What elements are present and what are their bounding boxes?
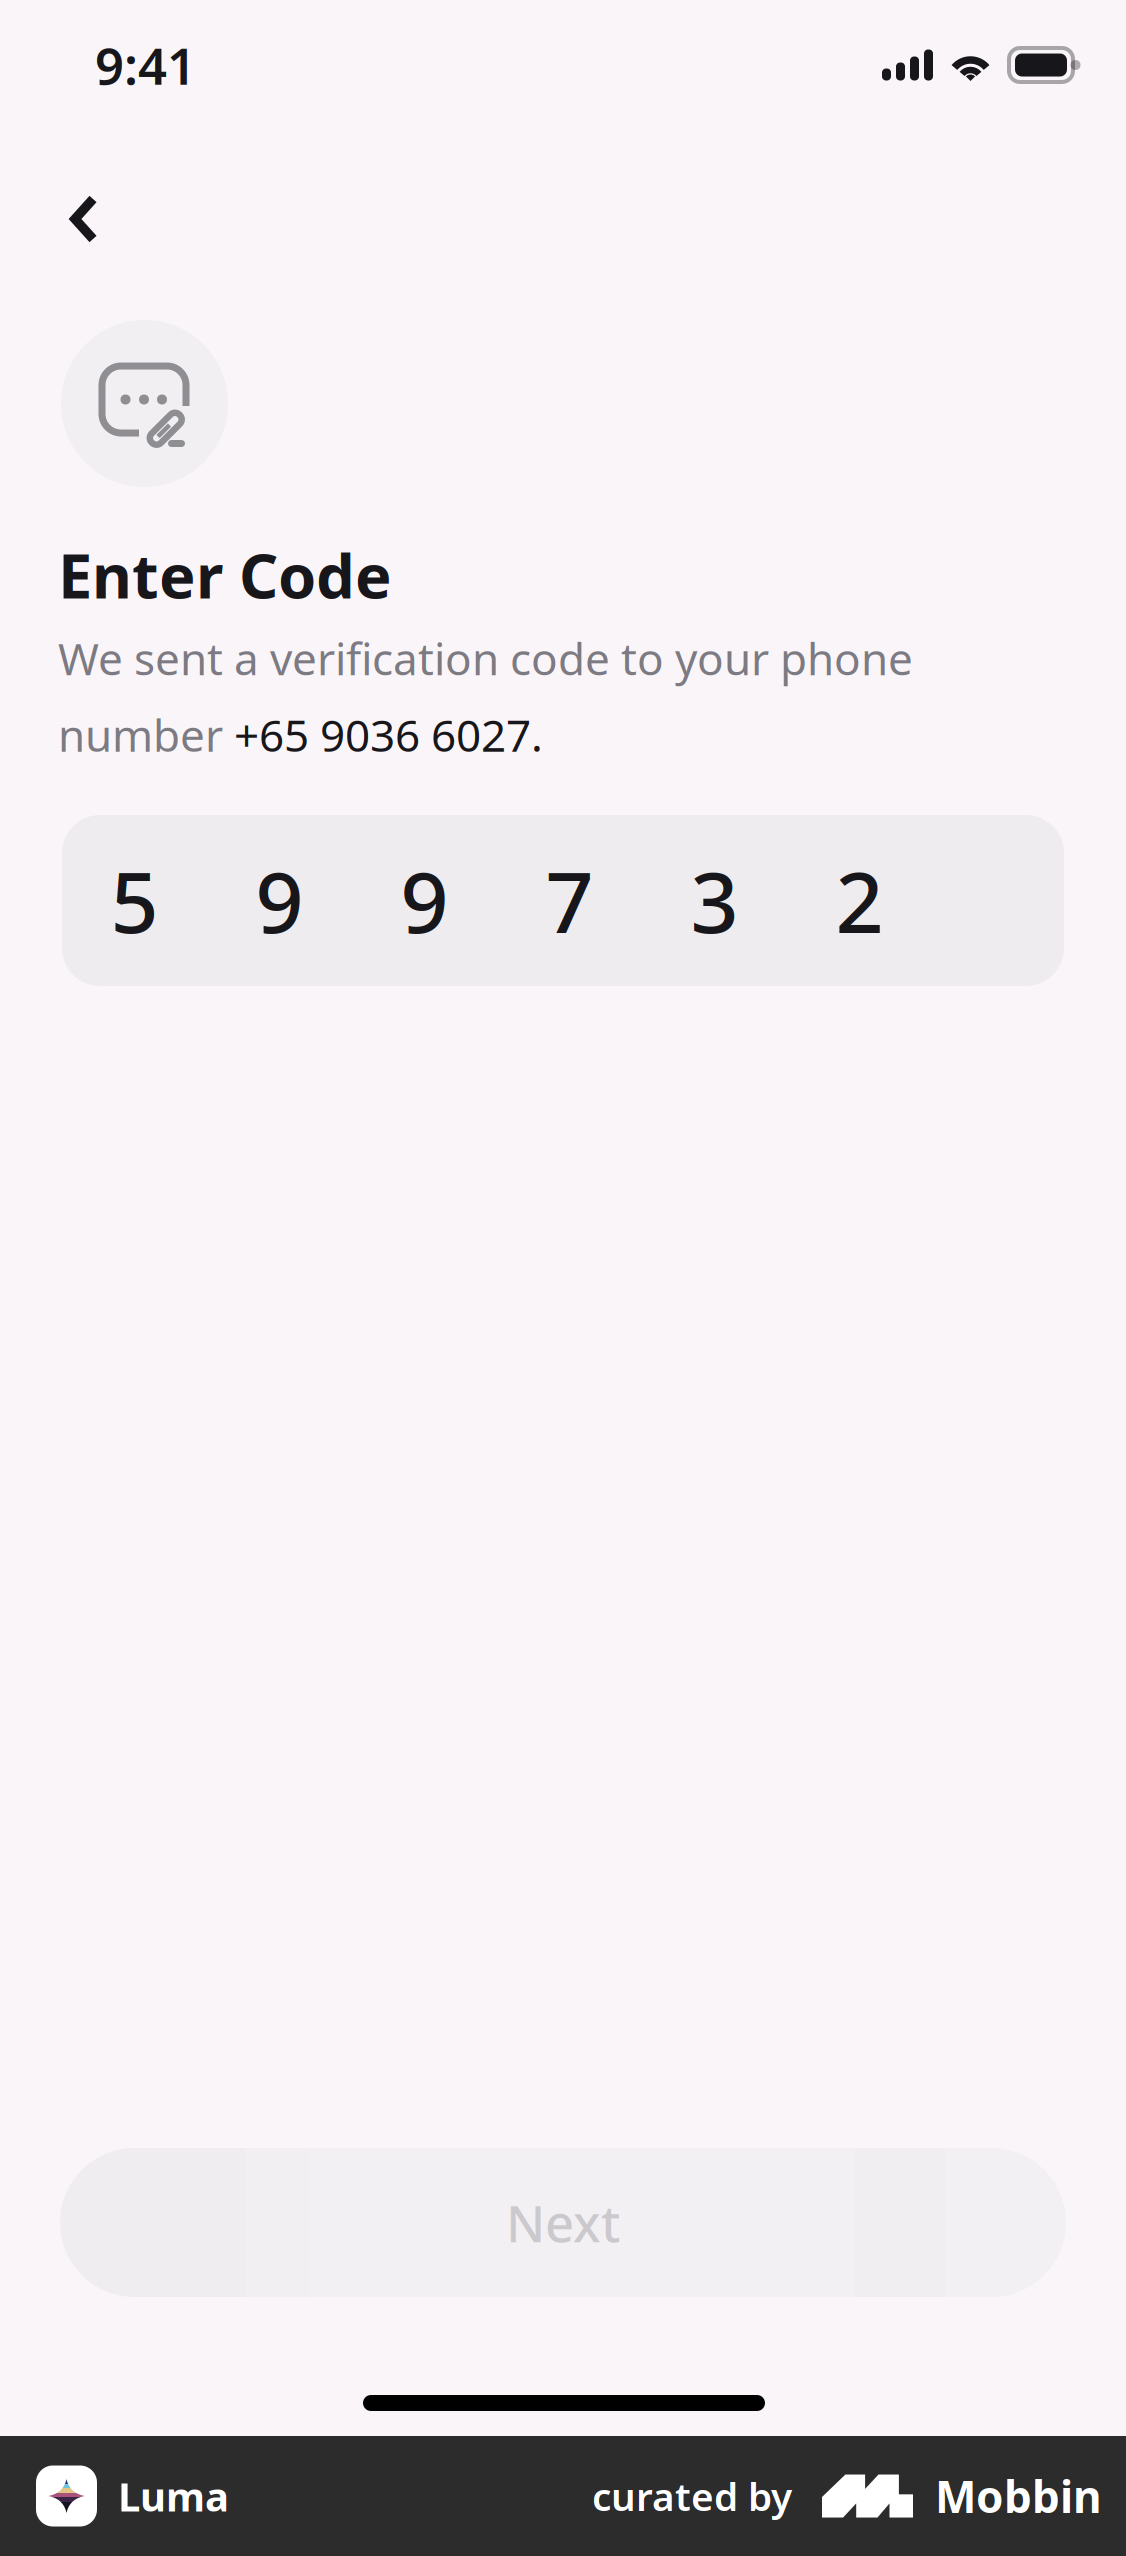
- staticText: +65 9036 6027.: [234, 705, 543, 764]
- button[interactable]: Verification code: [62, 815, 1064, 986]
- staticText: 3: [690, 845, 738, 956]
- staticText: 7: [545, 845, 593, 956]
- staticText: 2: [835, 845, 883, 956]
- staticText: 9: [400, 845, 448, 956]
- staticText: 9: [255, 845, 303, 956]
- staticText: 5: [110, 845, 158, 956]
- button[interactable]: Back: [32, 167, 136, 271]
- button[interactable]: Next: [60, 2148, 1066, 2297]
- staticText: number: [58, 705, 234, 764]
- staticText: curated by: [592, 2470, 792, 2522]
- staticText: Mobbin: [935, 2467, 1102, 2525]
- staticText: Luma: [118, 2469, 229, 2522]
- staticText: Next: [506, 2189, 620, 2256]
- staticText: Enter Code: [58, 534, 392, 615]
- staticText: We sent a verification code to your phon…: [58, 629, 913, 687]
- staticText: 9:41: [95, 31, 196, 99]
